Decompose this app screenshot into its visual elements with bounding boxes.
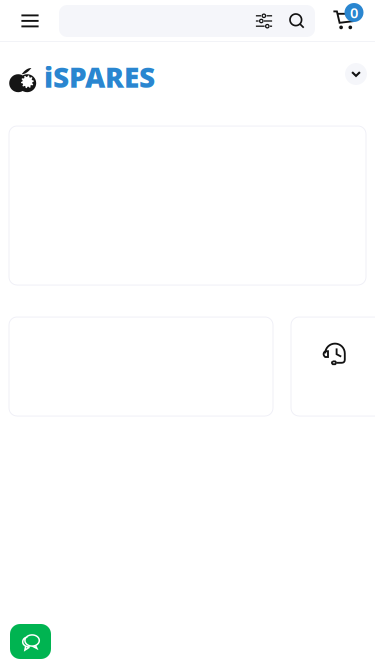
staticText: 0: [350, 3, 358, 22]
staticText: iSPARES: [44, 58, 155, 96]
button[interactable]: Search: [279, 5, 315, 37]
button[interactable]: Cart, 0 items: [328, 0, 361, 27]
button[interactable]: iSPARES: [9, 62, 155, 92]
button[interactable]: Support: [291, 317, 375, 416]
button[interactable]: Menu: [10, 0, 50, 42]
button[interactable]: Show more: [345, 63, 367, 85]
button[interactable]: Open chat: [10, 624, 51, 659]
button[interactable]: Refine search: [249, 5, 279, 37]
